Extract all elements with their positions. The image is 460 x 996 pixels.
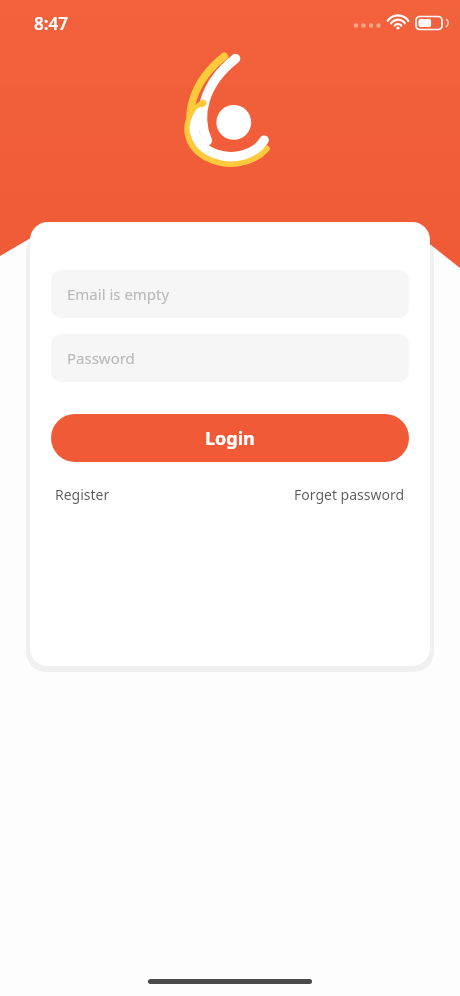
button[interactable]: Email is empty [51,270,409,318]
button[interactable]: Login [51,414,409,462]
staticText: Password [67,348,135,368]
staticText: Forget password [294,485,405,504]
staticText: Login [205,426,255,451]
button[interactable]: Password [51,334,409,382]
staticText: 8:47 [34,12,68,35]
staticText: Email is empty [67,284,170,304]
button[interactable]: Forget password [290,481,409,508]
button[interactable]: Register [51,481,114,508]
other: App logo [183,54,277,168]
staticText: Register [55,485,110,504]
